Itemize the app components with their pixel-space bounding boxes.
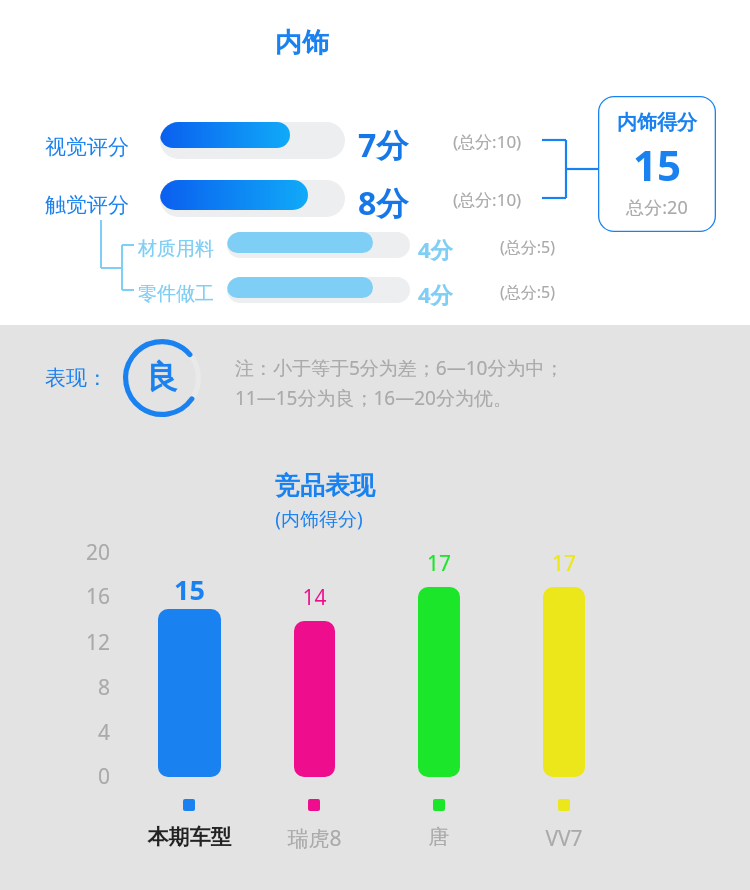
button[interactable]: 良 <box>123 339 201 417</box>
button[interactable] <box>543 587 585 777</box>
button[interactable] <box>160 122 345 159</box>
button[interactable] <box>418 587 460 777</box>
staticText: 唐 <box>378 824 500 850</box>
button[interactable] <box>227 232 410 258</box>
button[interactable] <box>294 621 335 777</box>
staticText: (总分:5) <box>500 236 556 258</box>
staticText: 8 <box>60 673 110 702</box>
button[interactable] <box>160 180 345 217</box>
staticText: 内饰 <box>275 26 329 60</box>
staticText: 15 <box>128 571 251 608</box>
staticText: 竞品表现 <box>275 470 375 501</box>
button[interactable] <box>227 277 410 303</box>
staticText: 15 <box>598 136 716 193</box>
staticText: 14 <box>264 583 365 612</box>
staticText: 7分 <box>358 123 409 167</box>
staticText: 本期车型 <box>118 824 261 850</box>
staticText: 16 <box>60 582 110 611</box>
staticText: (总分:10) <box>453 188 522 211</box>
staticText: 触觉评分 <box>45 192 129 218</box>
staticText: (内饰得分) <box>275 506 363 532</box>
staticText: (总分:10) <box>453 130 522 153</box>
staticText: 17 <box>388 549 490 578</box>
staticText: 12 <box>60 628 110 657</box>
staticText: 注：小于等于5分为差；6—10分为中； <box>235 355 564 381</box>
staticText: 视觉评分 <box>45 134 129 160</box>
staticText: VV7 <box>503 824 625 853</box>
staticText: 表现： <box>45 365 108 391</box>
staticText: 材质用料 <box>138 237 214 261</box>
staticText: 总分:20 <box>598 195 716 220</box>
staticText: 0 <box>60 762 110 791</box>
staticText: 4分 <box>418 234 453 264</box>
staticText: 零件做工 <box>138 282 214 306</box>
staticText: 内饰得分 <box>598 110 716 135</box>
staticText: (总分:5) <box>500 281 556 303</box>
button[interactable] <box>158 609 221 777</box>
staticText: 瑞虎8 <box>254 824 375 853</box>
button[interactable]: 内饰得分 <box>598 96 716 232</box>
staticText: 17 <box>513 549 615 578</box>
staticText: 4分 <box>418 279 453 309</box>
staticText: 11—15分为良；16—20分为优。 <box>235 385 512 411</box>
staticText: 4 <box>60 718 110 747</box>
staticText: 8分 <box>358 181 409 225</box>
staticText: 良 <box>146 357 178 397</box>
staticText: 20 <box>60 538 110 567</box>
